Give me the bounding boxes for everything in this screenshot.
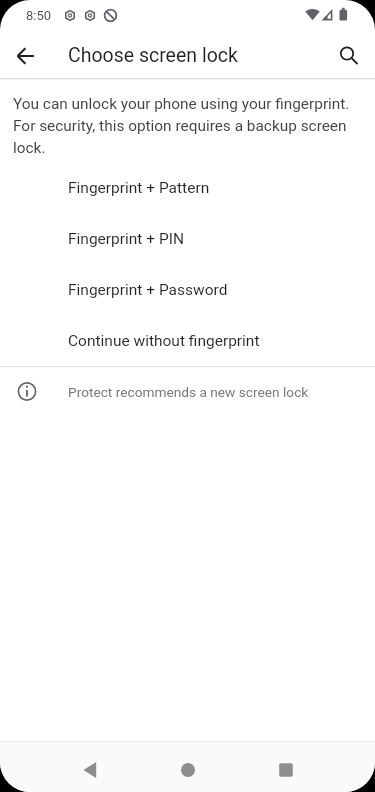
button[interactable] [67,746,115,792]
staticText: You can unlock your phone using your fin… [13,95,350,113]
button[interactable]: Fingerprint + Pattern [0,162,375,213]
button[interactable]: Fingerprint + PIN [0,213,375,264]
button[interactable] [324,31,372,79]
staticText: lock. [13,139,46,157]
staticText: Fingerprint + Password [68,281,228,299]
staticText: Fingerprint + Pattern [68,179,210,197]
staticText: Protect recommends a new screen lock [68,384,309,400]
staticText: Continue without fingerprint [68,332,260,350]
staticText: Choose screen lock [68,44,238,67]
button[interactable]: Fingerprint + Password [0,264,375,315]
staticText: Fingerprint + PIN [68,230,184,248]
staticText: 8:50 [26,8,52,23]
button[interactable] [164,746,212,792]
button[interactable]: Continue without fingerprint [0,315,375,366]
staticText: For security, this option requires a bac… [13,117,347,135]
button[interactable] [2,32,50,80]
button[interactable] [262,746,310,792]
